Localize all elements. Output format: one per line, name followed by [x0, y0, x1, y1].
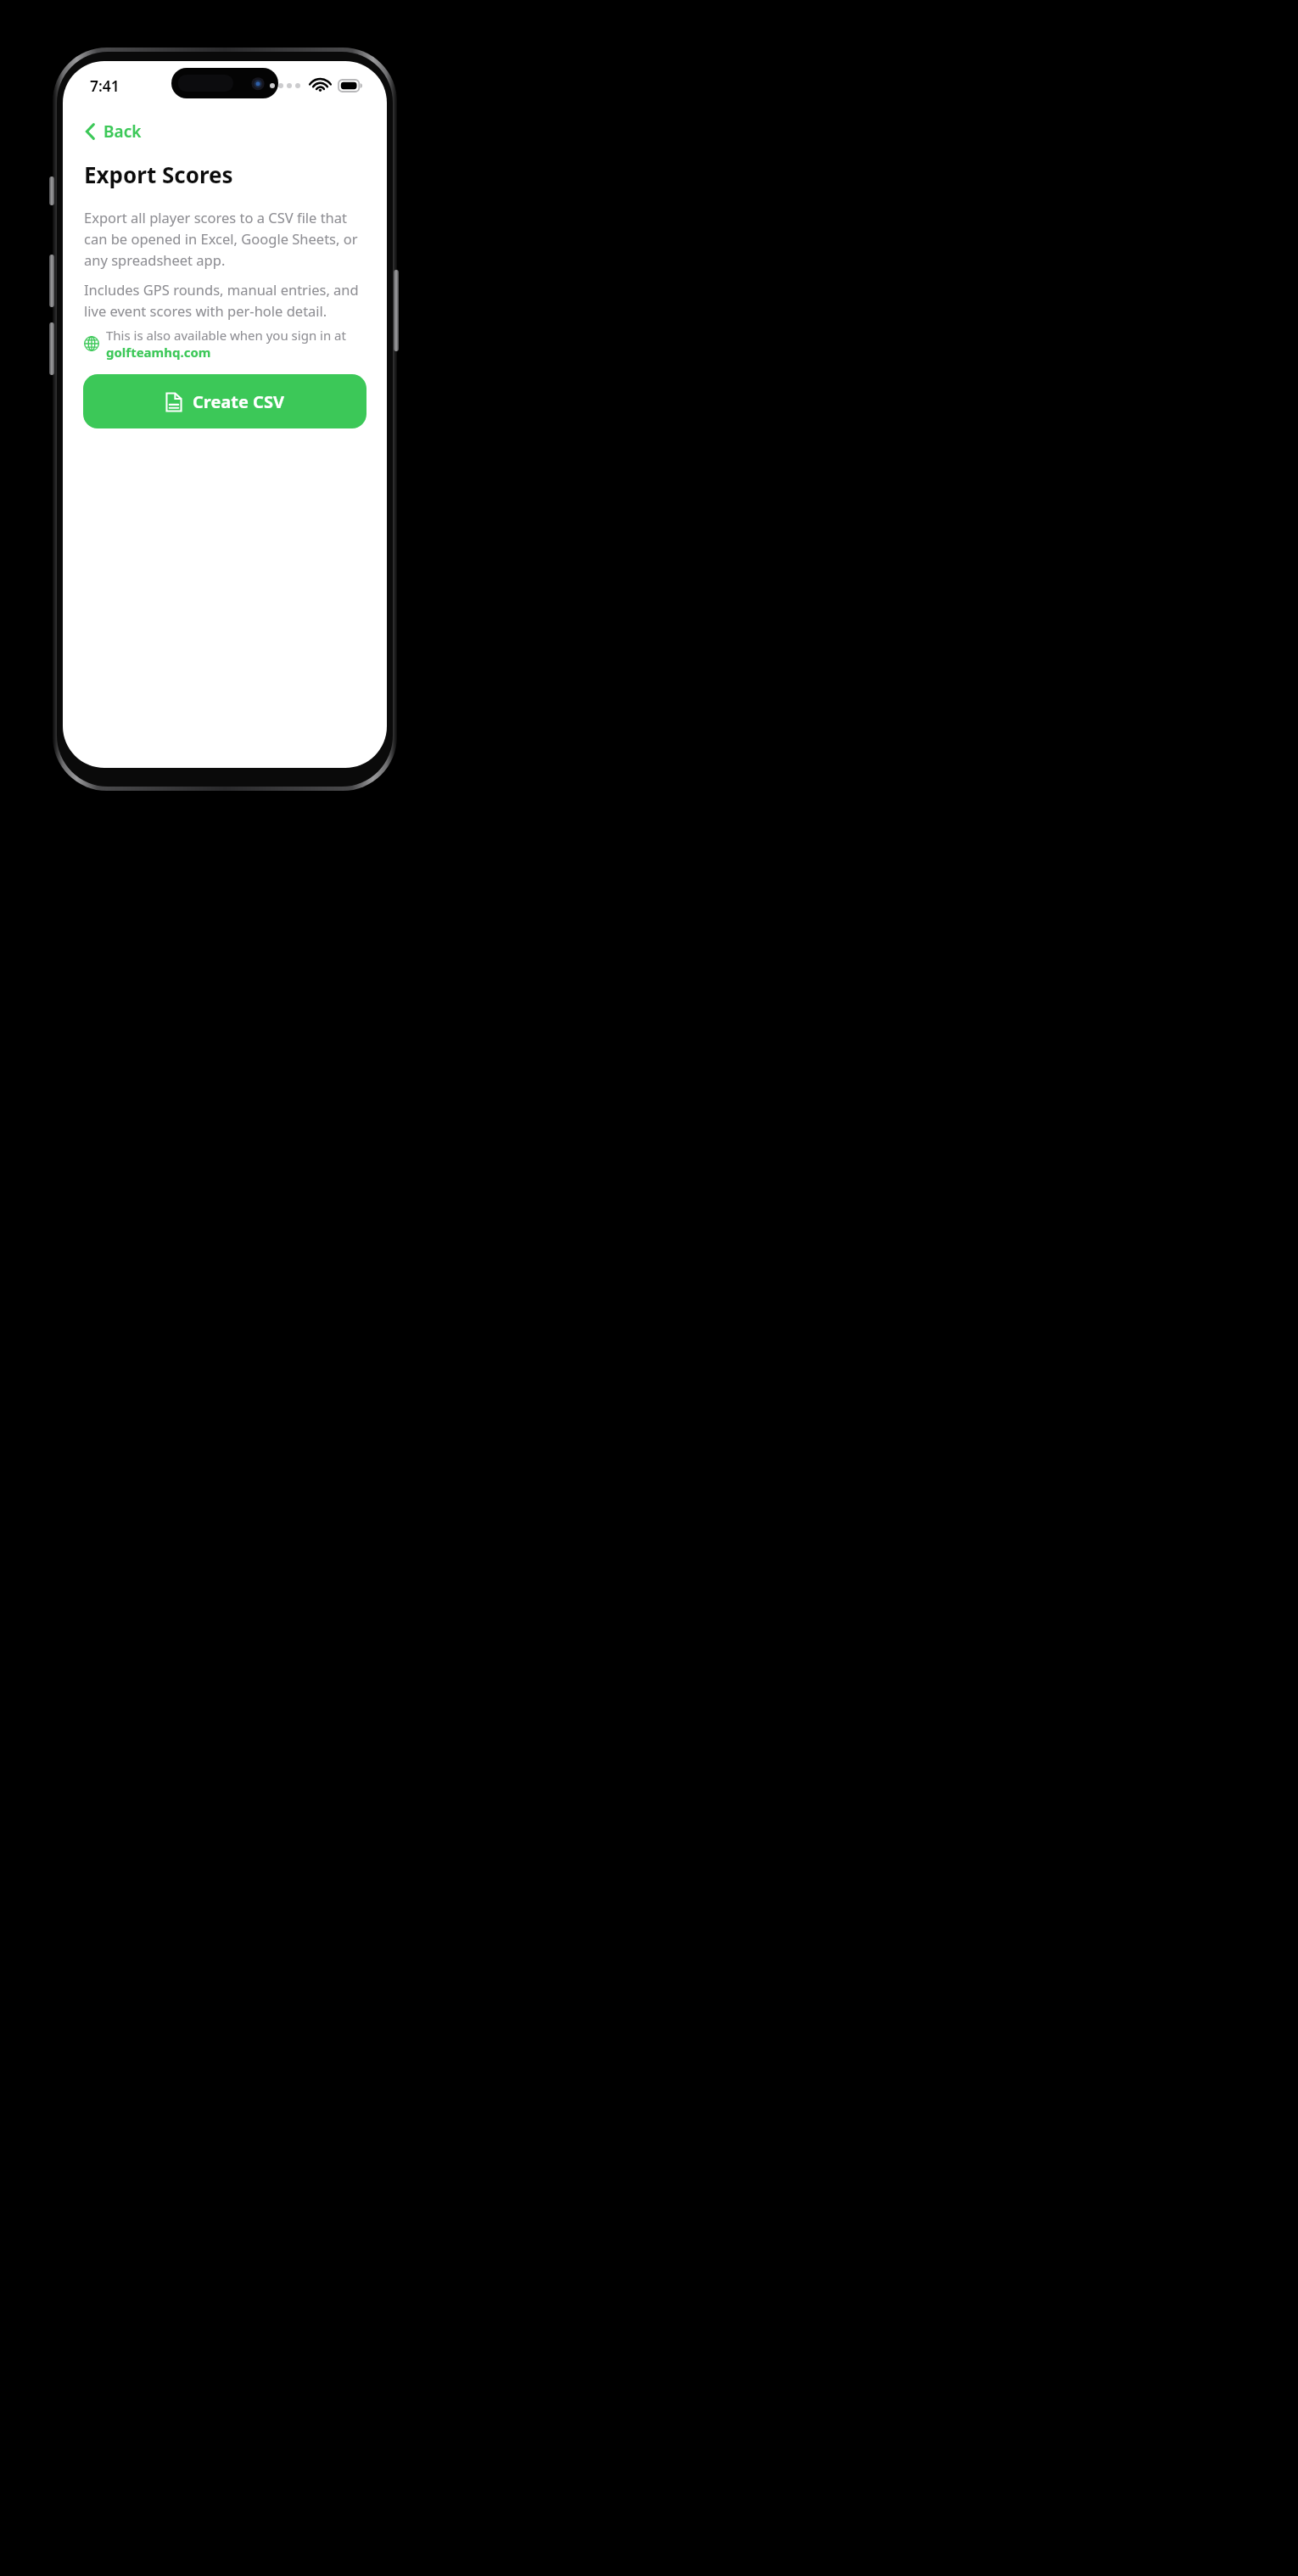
- staticText: 7:41: [90, 76, 120, 96]
- staticText: Export all player scores to a CSV file t…: [84, 208, 368, 269]
- button[interactable]: Create CSV: [83, 374, 366, 428]
- staticText: Includes GPS rounds, manual entries, and…: [84, 280, 372, 320]
- button[interactable]: Website: [84, 327, 370, 361]
- button[interactable]: Back: [81, 117, 145, 146]
- other: Website: [84, 336, 99, 351]
- staticText: Export Scores: [84, 160, 233, 189]
- staticText: Back: [104, 120, 142, 143]
- staticText: Create CSV: [193, 390, 284, 413]
- staticText: This is also available when you sign in …: [106, 327, 370, 361]
